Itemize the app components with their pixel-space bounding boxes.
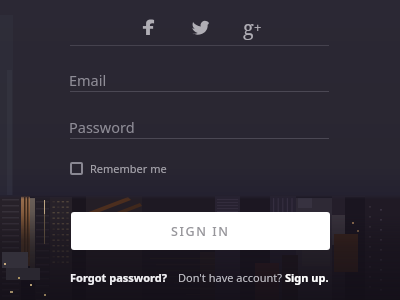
- button[interactable]: [174, 12, 226, 42]
- button[interactable]: SIGN IN: [71, 212, 330, 250]
- staticText: Password: [69, 117, 135, 137]
- button[interactable]: Remember me: [70, 161, 167, 176]
- button[interactable]: g: [226, 12, 278, 42]
- button[interactable]: Sign up.: [285, 270, 329, 285]
- staticText: +: [254, 18, 262, 36]
- staticText: Remember me: [90, 161, 167, 176]
- staticText: SIGN IN: [171, 223, 230, 240]
- staticText: g: [243, 14, 254, 41]
- button[interactable]: Forgot password?: [70, 270, 167, 285]
- button[interactable]: [122, 12, 174, 42]
- staticText: Email: [69, 70, 107, 90]
- staticText: Don't have account?: [178, 270, 285, 285]
